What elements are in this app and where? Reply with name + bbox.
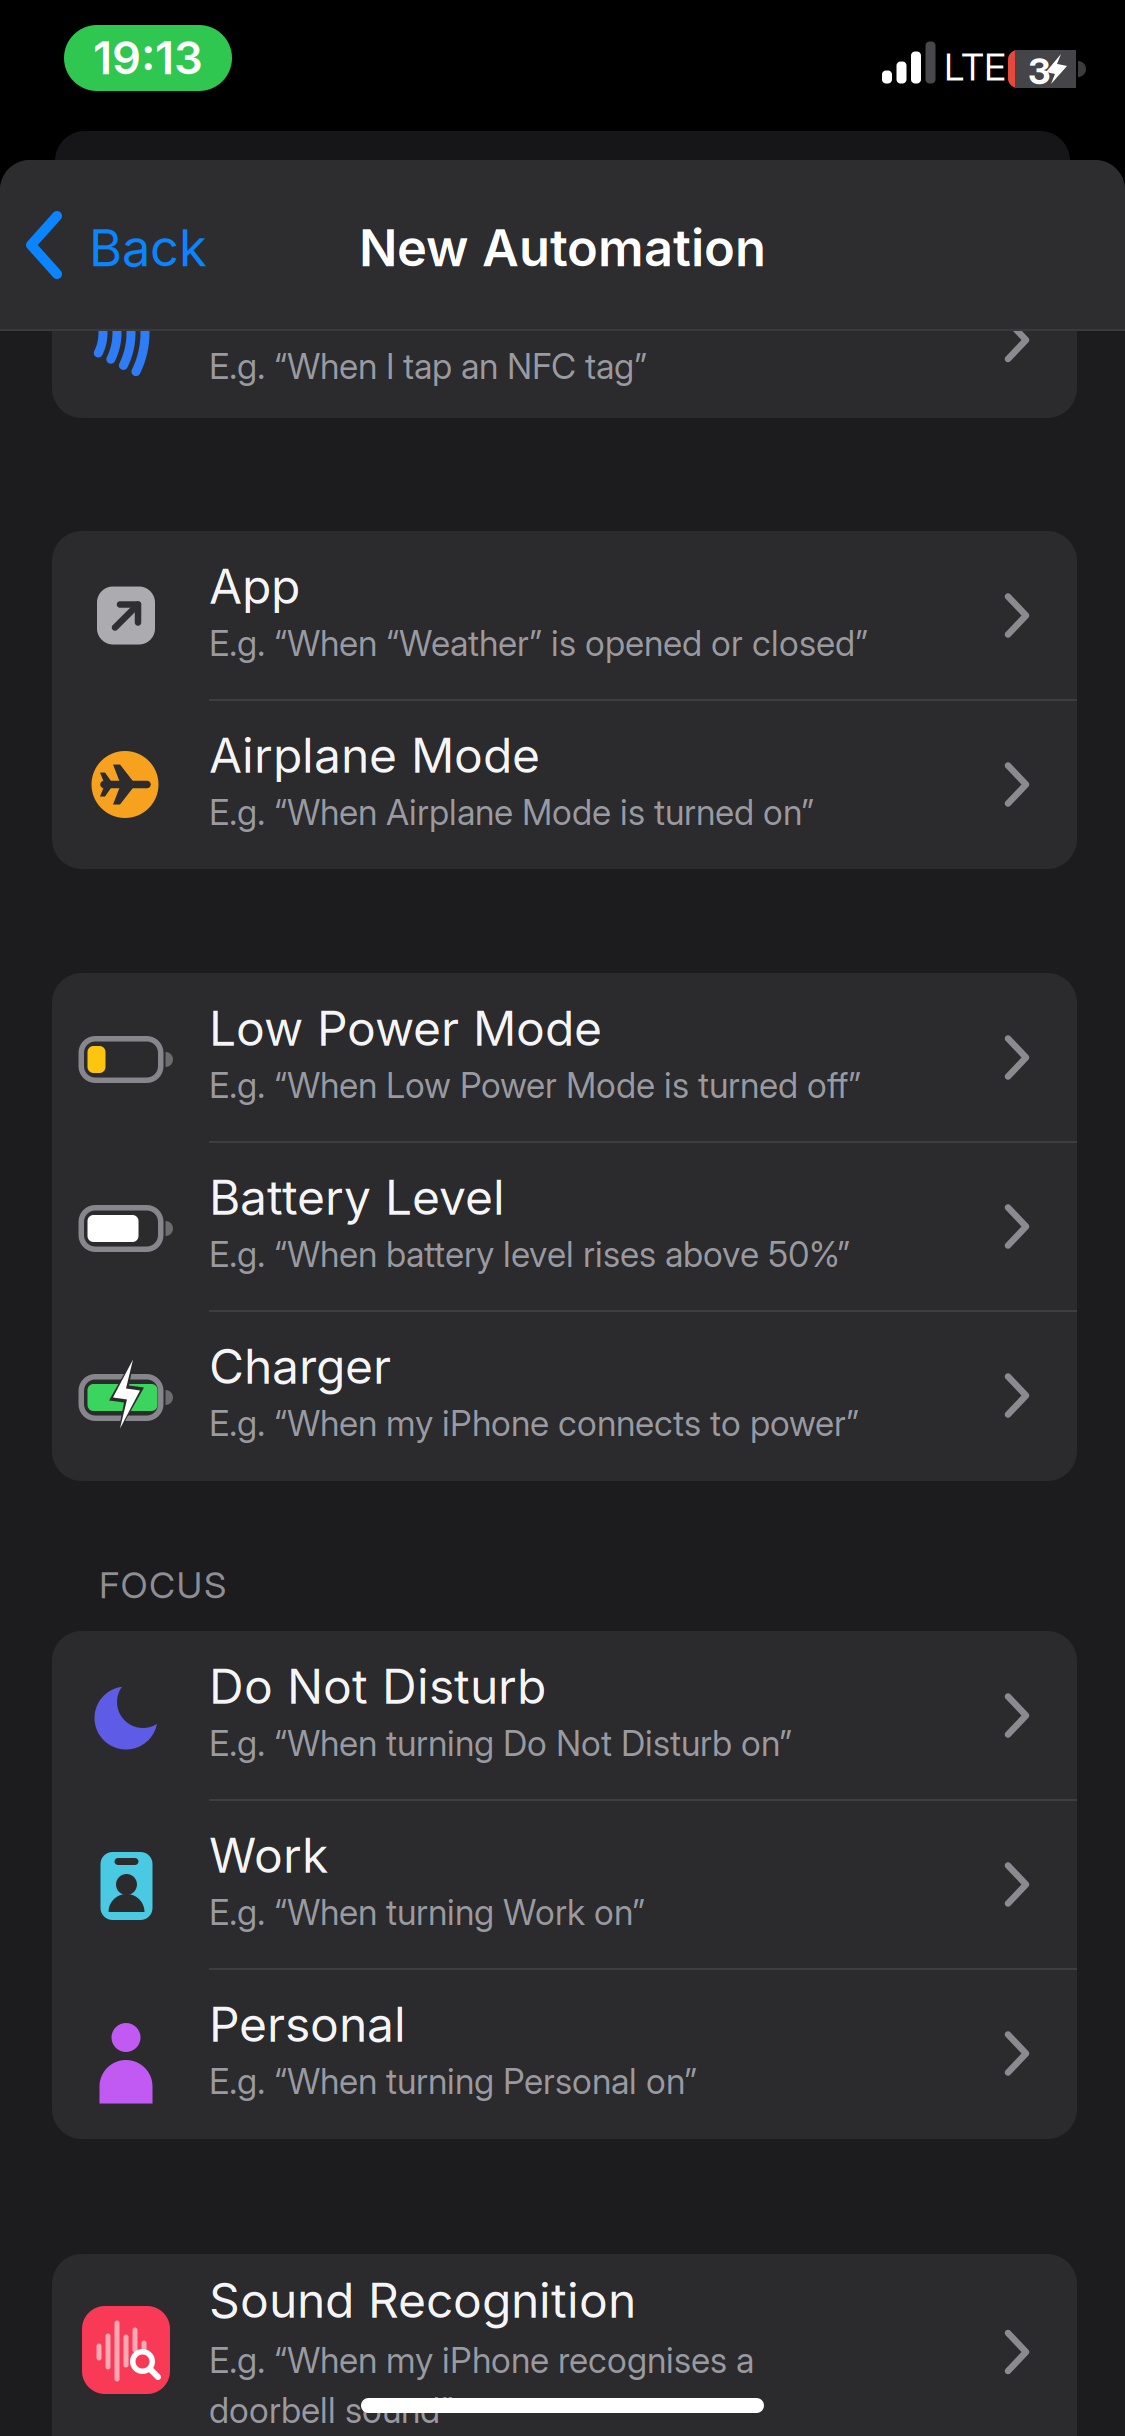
- staticText: E.g. “When Airplane Mode is turned on”: [209, 792, 814, 833]
- staticText: New Automation: [359, 218, 766, 278]
- button[interactable]: Airplane Mode: [52, 700, 1077, 869]
- staticText: Sound Recognition: [209, 2272, 636, 2329]
- staticText: Do Not Disturb: [209, 1658, 546, 1715]
- staticText: Low Power Mode: [209, 1000, 602, 1057]
- staticText: 19:13: [93, 31, 203, 84]
- staticText: 3: [1028, 50, 1051, 92]
- staticText: Work: [209, 1827, 328, 1884]
- button[interactable]: Battery Level: [52, 1142, 1077, 1311]
- staticText: Personal: [209, 1996, 406, 2053]
- button[interactable]: Do Not Disturb: [52, 1631, 1077, 1800]
- staticText: Airplane Mode: [209, 727, 540, 784]
- staticText: E.g. “When I tap an NFC tag”: [209, 346, 647, 387]
- button[interactable]: NFC: [52, 200, 1077, 418]
- staticText: E.g. “When my iPhone connects to power”: [209, 1403, 859, 1444]
- staticText: doorbell sound”: [209, 2390, 453, 2431]
- staticText: App: [209, 558, 300, 615]
- staticText: E.g. “When turning Personal on”: [209, 2061, 697, 2102]
- staticText: Back: [89, 218, 207, 278]
- staticText: E.g. “When turning Work on”: [209, 1892, 645, 1933]
- button[interactable]: Personal: [52, 1969, 1077, 2138]
- staticText: E.g. “When turning Do Not Disturb on”: [209, 1723, 792, 1764]
- staticText: E.g. “When battery level rises above 50%…: [209, 1234, 850, 1275]
- button[interactable]: Work: [52, 1800, 1077, 1969]
- button[interactable]: Back: [0, 160, 240, 330]
- staticText: FOCUS: [99, 1564, 226, 1606]
- button[interactable]: Charger: [52, 1311, 1077, 1480]
- staticText: Charger: [209, 1338, 391, 1395]
- staticText: Battery Level: [209, 1169, 505, 1226]
- button[interactable]: Low Power Mode: [52, 973, 1077, 1142]
- staticText: E.g. “When Low Power Mode is turned off”: [209, 1065, 861, 1106]
- staticText: LTE: [944, 45, 1006, 89]
- staticText: E.g. “When my iPhone recognises a: [209, 2340, 754, 2381]
- button[interactable]: App: [52, 531, 1077, 700]
- staticText: E.g. “When “Weather” is opened or closed…: [209, 623, 868, 664]
- button[interactable]: Sound Recognition: [52, 2254, 1077, 2436]
